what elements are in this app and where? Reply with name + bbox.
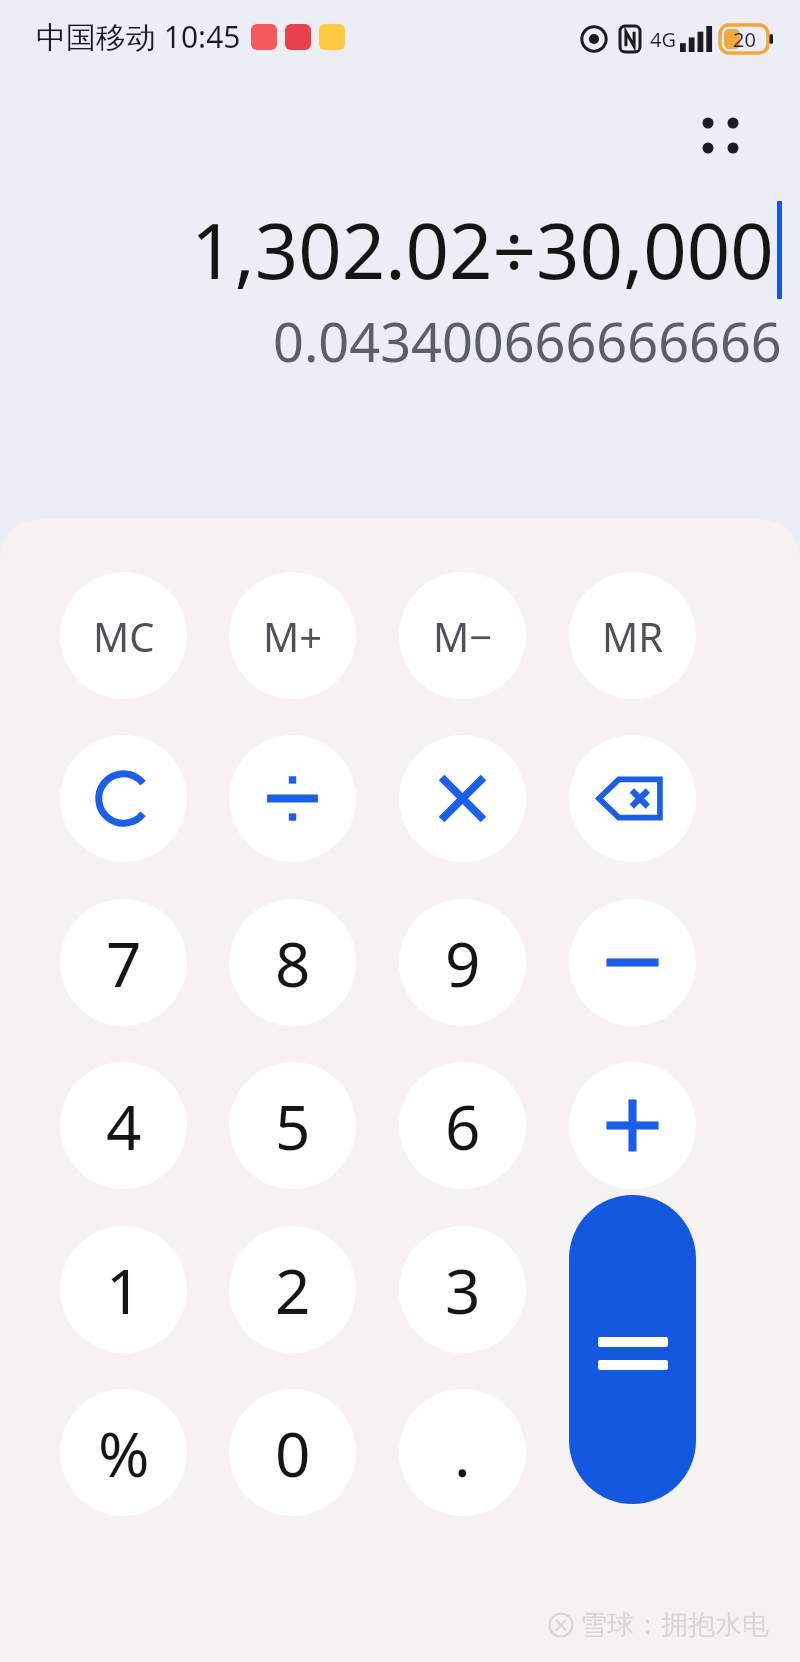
- button[interactable]: 6: [399, 1062, 526, 1189]
- button[interactable]: Plus: [569, 1062, 696, 1189]
- staticText: MC: [93, 609, 155, 663]
- button[interactable]: M−: [399, 572, 526, 699]
- staticText: 3: [445, 1248, 481, 1332]
- staticText: M+: [263, 609, 323, 663]
- button[interactable]: Minus: [569, 899, 696, 1026]
- staticText: 20: [733, 26, 756, 53]
- button[interactable]: M+: [229, 572, 356, 699]
- staticText: 4G: [650, 26, 676, 53]
- button[interactable]: Multiply: [399, 735, 526, 862]
- button[interactable]: Clear: [60, 735, 187, 862]
- button[interactable]: Equals: [569, 1195, 696, 1504]
- staticText: M−: [433, 609, 493, 663]
- button[interactable]: 5: [229, 1062, 356, 1189]
- staticText: 8: [275, 921, 311, 1005]
- staticText: 5: [275, 1084, 311, 1168]
- staticText: 9: [445, 921, 481, 1005]
- button[interactable]: 7: [60, 899, 187, 1026]
- button[interactable]: 1: [60, 1226, 187, 1353]
- staticText: 雪球：拥抱水电: [580, 1608, 769, 1642]
- staticText: 4: [106, 1084, 142, 1168]
- staticText: %: [98, 1411, 150, 1495]
- button[interactable]: 2: [229, 1226, 356, 1353]
- button[interactable]: Backspace: [569, 735, 696, 862]
- staticText: .: [454, 1411, 471, 1495]
- button[interactable]: 4: [60, 1062, 187, 1189]
- button[interactable]: .: [399, 1389, 526, 1516]
- button[interactable]: 3: [399, 1226, 526, 1353]
- staticText: 1,302.02÷30,000: [191, 198, 774, 302]
- button[interactable]: 0: [229, 1389, 356, 1516]
- staticText: 中国移动 10:45: [36, 16, 241, 57]
- staticText: 6: [445, 1084, 481, 1168]
- button[interactable]: 9: [399, 899, 526, 1026]
- staticText: 7: [106, 921, 142, 1005]
- button[interactable]: MR: [569, 572, 696, 699]
- button[interactable]: More options: [676, 94, 740, 158]
- staticText: 0: [275, 1411, 311, 1495]
- staticText: MR: [602, 609, 664, 663]
- button[interactable]: %: [60, 1389, 187, 1516]
- button[interactable]: MC: [60, 572, 187, 699]
- staticText: 1: [106, 1248, 142, 1332]
- button[interactable]: 8: [229, 899, 356, 1026]
- staticText: 2: [275, 1248, 311, 1332]
- staticText: 0.043400666666666: [273, 304, 782, 378]
- button[interactable]: Divide: [229, 735, 356, 862]
